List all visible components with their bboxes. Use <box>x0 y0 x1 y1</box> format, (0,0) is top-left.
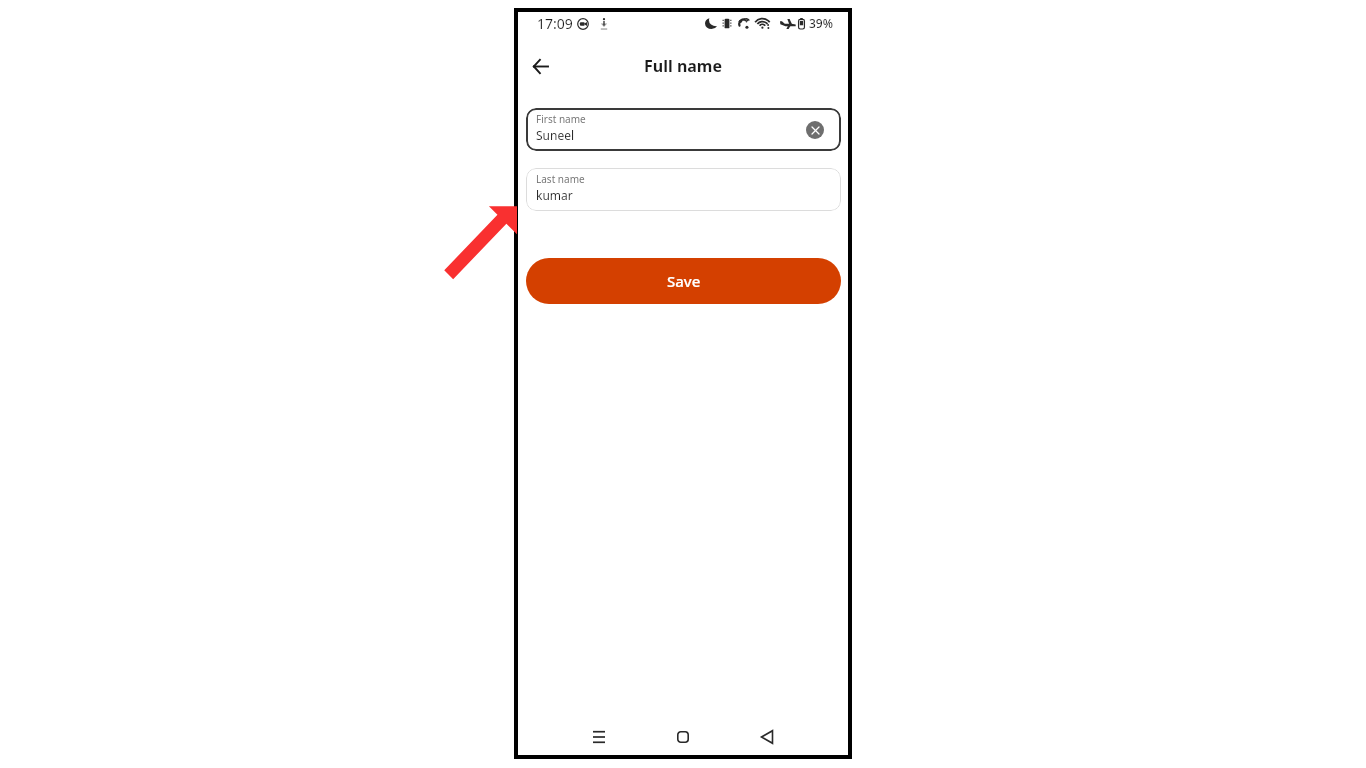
staticText: 17:09 <box>537 14 573 33</box>
staticText: 39% <box>809 15 833 31</box>
button[interactable]: First name <box>526 108 841 151</box>
staticText: kumar <box>536 187 573 203</box>
staticText: First name <box>536 112 586 126</box>
button[interactable]: Recent apps <box>579 717 619 757</box>
button[interactable]: Clear text <box>806 121 824 139</box>
staticText: Last name <box>536 172 585 186</box>
staticText: Full name <box>644 55 723 77</box>
staticText: Save <box>667 271 701 291</box>
button[interactable]: Back <box>747 717 787 757</box>
button[interactable]: Back <box>522 48 558 84</box>
button[interactable]: Last name <box>526 168 841 211</box>
button[interactable]: Save <box>526 258 841 304</box>
button[interactable]: Home <box>663 717 703 757</box>
staticText: Suneel <box>536 127 575 143</box>
